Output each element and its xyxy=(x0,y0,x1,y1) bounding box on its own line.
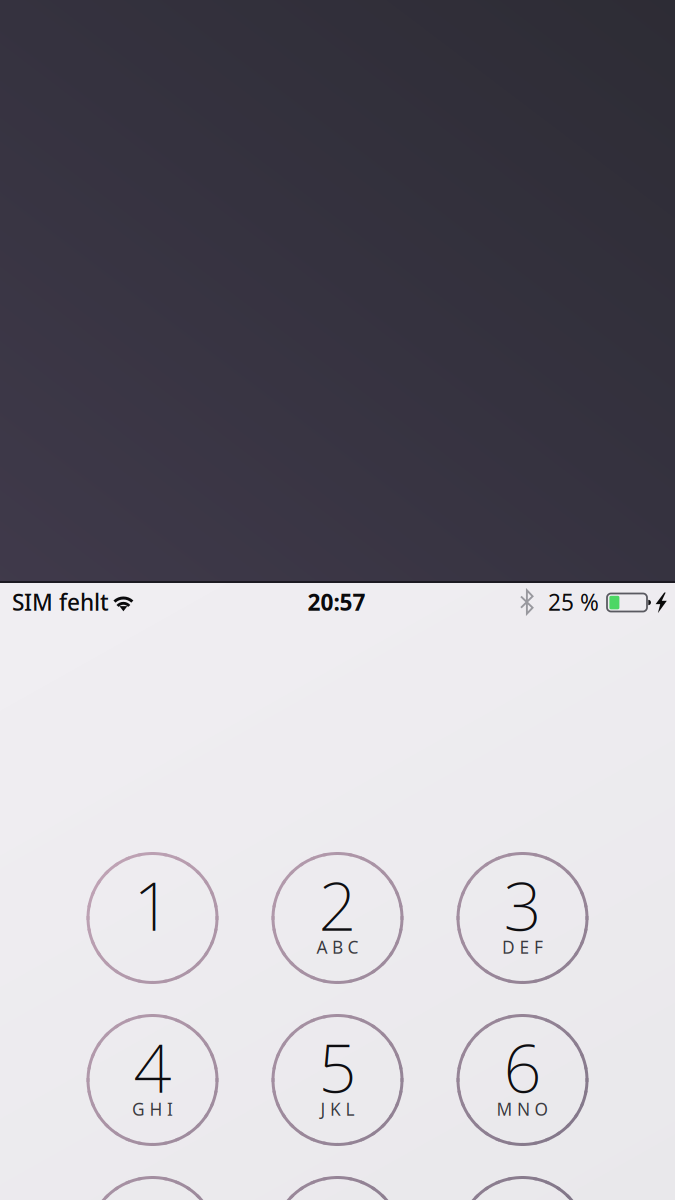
button[interactable]: 6 xyxy=(456,1014,588,1146)
staticText: 5 xyxy=(318,1023,356,1111)
staticText: A xyxy=(316,935,327,958)
staticText: M xyxy=(496,1097,512,1120)
staticText: J xyxy=(320,1097,325,1120)
staticText: F xyxy=(534,935,543,958)
staticText: 2 xyxy=(318,861,356,949)
staticText: D xyxy=(502,935,515,958)
staticText: 25 % xyxy=(548,587,599,617)
staticText: N xyxy=(517,1097,530,1120)
staticText: O xyxy=(534,1097,548,1120)
staticText: C xyxy=(347,935,358,958)
staticText: 3 xyxy=(503,861,541,949)
staticText: 1 xyxy=(133,861,171,949)
staticText: L xyxy=(345,1097,354,1120)
staticText: I xyxy=(167,1097,173,1120)
staticText: E xyxy=(519,935,529,958)
button[interactable]: 7 xyxy=(86,1176,218,1200)
staticText: 20:57 xyxy=(307,587,365,617)
button[interactable]: 9 xyxy=(456,1176,588,1200)
button[interactable]: 3 xyxy=(456,852,588,984)
button[interactable]: 5 xyxy=(271,1014,403,1146)
button[interactable]: 2 xyxy=(271,852,403,984)
staticText: K xyxy=(330,1097,341,1120)
staticText: G xyxy=(132,1097,145,1120)
staticText: 6 xyxy=(503,1023,541,1111)
button[interactable]: 8 xyxy=(271,1176,403,1200)
staticText: H xyxy=(149,1097,162,1120)
button[interactable]: 1 xyxy=(86,852,218,984)
staticText: B xyxy=(332,935,343,958)
staticText: 4 xyxy=(133,1023,171,1111)
button[interactable]: 4 xyxy=(86,1014,218,1146)
staticText: SIM fehlt xyxy=(12,587,109,617)
